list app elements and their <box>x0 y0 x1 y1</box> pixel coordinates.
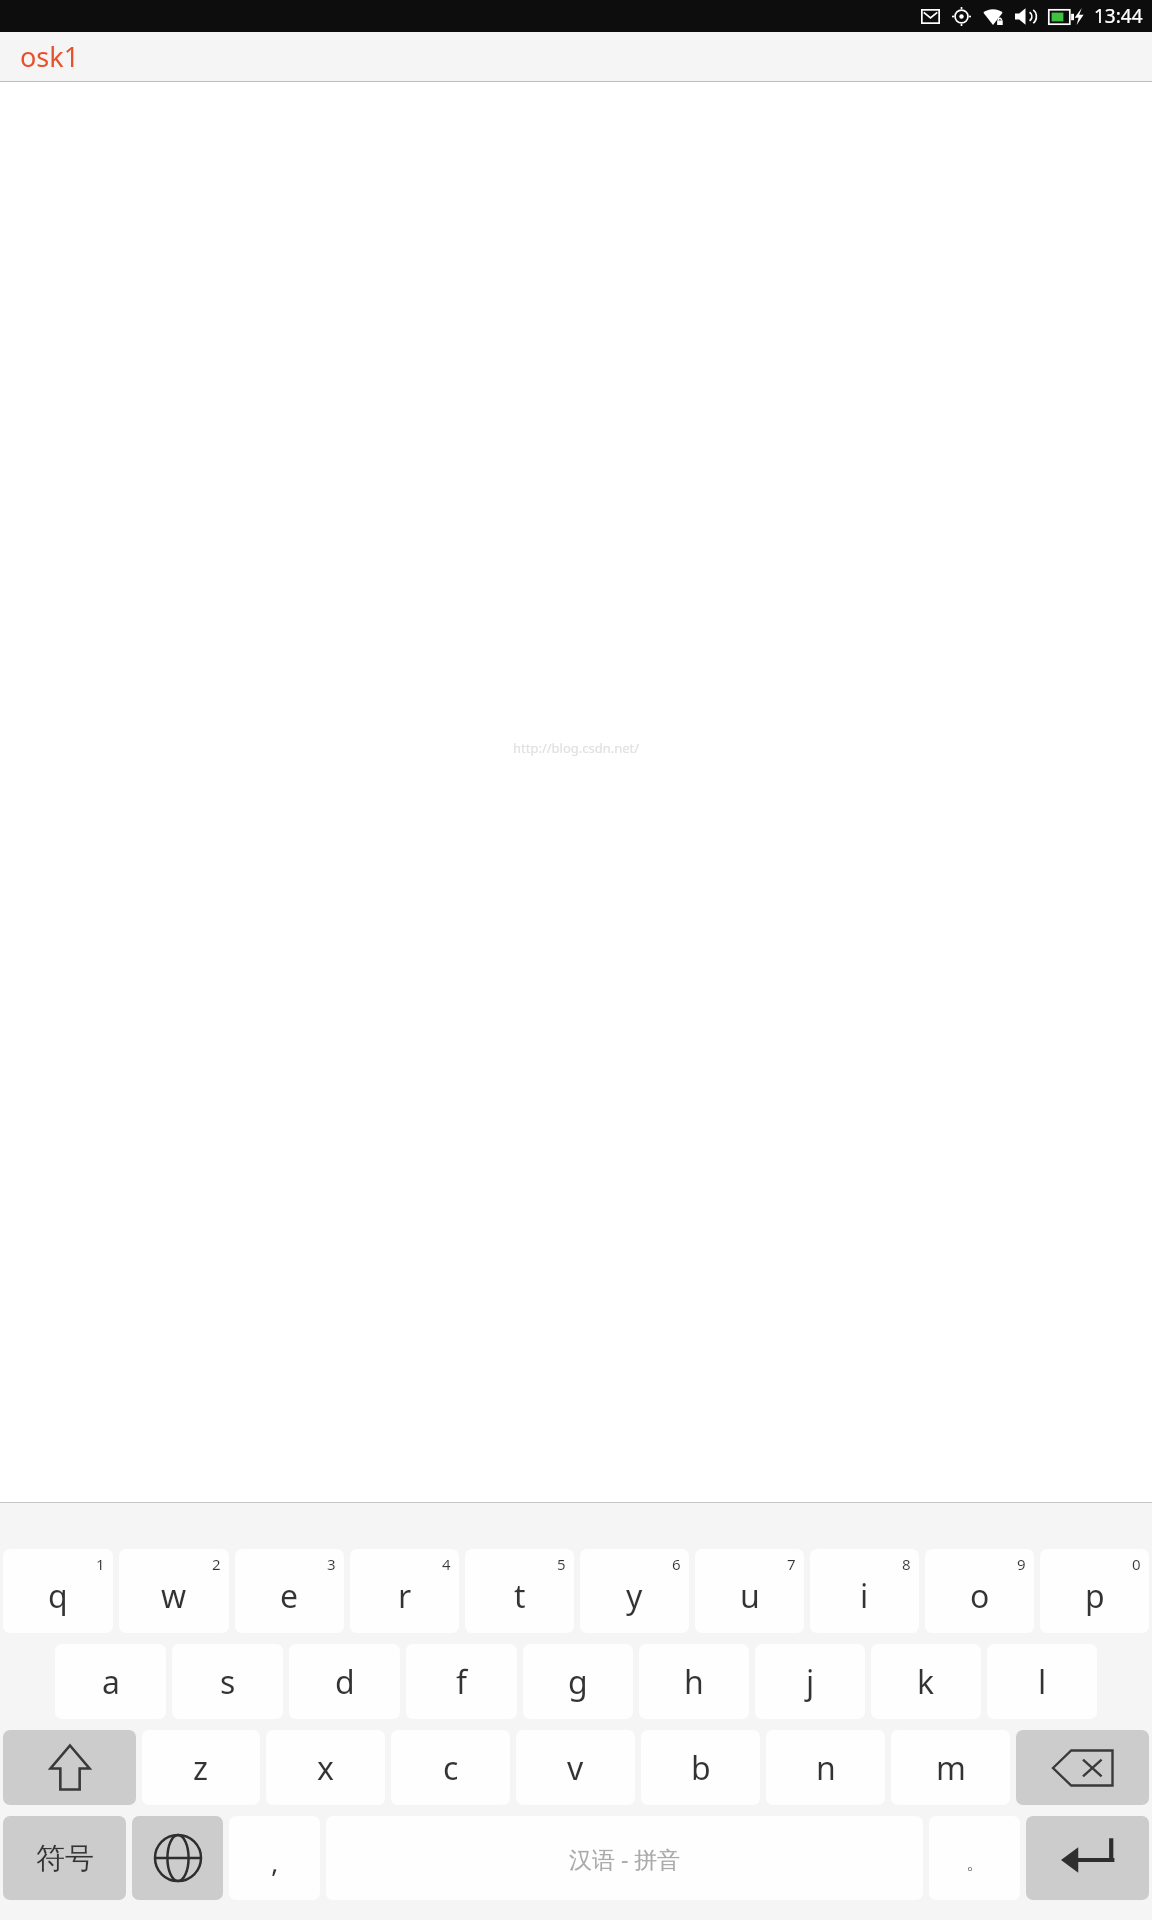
staticText: o <box>970 1574 990 1618</box>
staticText: n <box>816 1746 836 1790</box>
button[interactable]: x <box>266 1730 385 1805</box>
staticText: 13:44 <box>1094 3 1143 29</box>
staticText: m <box>936 1746 966 1790</box>
staticText: p <box>1085 1574 1105 1618</box>
staticText: k <box>917 1660 935 1704</box>
staticText: e <box>280 1574 299 1618</box>
staticText: 7 <box>787 1554 796 1574</box>
button[interactable]: 汉语 - 拼音 <box>326 1816 923 1900</box>
button[interactable]: 符号 <box>3 1816 126 1900</box>
staticText: f <box>456 1660 468 1704</box>
button[interactable]: 4 <box>350 1549 459 1633</box>
button[interactable]: b <box>641 1730 760 1805</box>
staticText: x <box>317 1746 334 1790</box>
staticText: 。 <box>966 1852 984 1875</box>
button[interactable]: 3 <box>235 1549 344 1633</box>
staticText: 3 <box>327 1554 336 1574</box>
staticText: u <box>740 1574 760 1618</box>
staticText: v <box>567 1746 584 1790</box>
button[interactable]: 。 <box>929 1816 1020 1900</box>
button[interactable]: h <box>639 1644 749 1719</box>
staticText: 8 <box>902 1554 911 1574</box>
staticText: 9 <box>1017 1554 1026 1574</box>
staticText: w <box>161 1574 187 1618</box>
staticText: 汉语 - 拼音 <box>569 1843 681 1874</box>
button[interactable]: n <box>766 1730 885 1805</box>
staticText: c <box>443 1746 459 1790</box>
button[interactable]: 9 <box>925 1549 1034 1633</box>
staticText: 4 <box>442 1554 451 1574</box>
button[interactable]: 5 <box>465 1549 574 1633</box>
button[interactable]: Shift <box>3 1730 136 1805</box>
button[interactable]: v <box>516 1730 635 1805</box>
staticText: b <box>691 1746 711 1790</box>
button[interactable]: Backspace <box>1016 1730 1149 1805</box>
staticText: y <box>626 1574 643 1618</box>
staticText: d <box>335 1660 355 1704</box>
staticText: 0 <box>1132 1554 1141 1574</box>
staticText: 5 <box>557 1554 566 1574</box>
staticText: h <box>684 1660 704 1704</box>
button[interactable]: , <box>229 1816 320 1900</box>
button[interactable]: d <box>289 1644 400 1719</box>
staticText: z <box>193 1746 209 1790</box>
staticText: s <box>220 1660 236 1704</box>
staticText: l <box>1038 1660 1047 1704</box>
button[interactable]: j <box>755 1644 865 1719</box>
staticText: a <box>102 1660 120 1704</box>
staticText: osk1 <box>20 38 80 75</box>
staticText: q <box>48 1574 68 1618</box>
staticText: 1 <box>96 1554 105 1574</box>
staticText: t <box>514 1574 526 1618</box>
staticText: i <box>860 1574 869 1618</box>
button[interactable]: k <box>871 1644 981 1719</box>
button[interactable]: f <box>406 1644 517 1719</box>
button[interactable]: 1 <box>3 1549 113 1633</box>
button[interactable]: a <box>55 1644 166 1719</box>
button[interactable]: Switch input language <box>132 1816 223 1900</box>
button[interactable]: s <box>172 1644 283 1719</box>
staticText: j <box>806 1660 815 1704</box>
staticText: r <box>398 1574 412 1618</box>
staticText: , <box>271 1842 279 1880</box>
staticText: 2 <box>212 1554 221 1574</box>
button[interactable]: 2 <box>119 1549 229 1633</box>
button[interactable]: c <box>391 1730 510 1805</box>
button[interactable]: 7 <box>695 1549 804 1633</box>
button[interactable]: z <box>142 1730 260 1805</box>
staticText: 符号 <box>36 1840 94 1877</box>
button[interactable]: l <box>987 1644 1097 1719</box>
button[interactable]: m <box>891 1730 1010 1805</box>
button[interactable]: Enter <box>1026 1816 1149 1900</box>
staticText: 6 <box>672 1554 681 1574</box>
button[interactable]: 8 <box>810 1549 919 1633</box>
button[interactable]: g <box>523 1644 633 1719</box>
button[interactable]: 0 <box>1040 1549 1149 1633</box>
staticText: http://blog.csdn.net/ <box>513 739 640 757</box>
staticText: g <box>568 1660 588 1704</box>
button[interactable]: 6 <box>580 1549 689 1633</box>
